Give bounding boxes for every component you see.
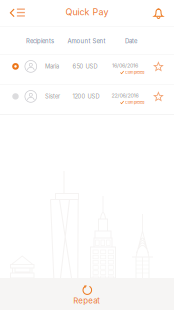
staticText: Repeat [73, 296, 100, 305]
staticText: Sister [45, 93, 60, 100]
staticText: 650 USD [72, 63, 97, 70]
staticText: Date [125, 37, 137, 45]
staticText: Quick Pay [65, 7, 108, 17]
button[interactable]: Sister [0, 85, 174, 115]
button[interactable]: Notifications [145, 1, 171, 25]
staticText: 1200 USD [72, 93, 99, 100]
staticText: 22/06/2016 [111, 92, 138, 99]
button[interactable]: Maria [0, 55, 174, 85]
staticText: 16/06/2016 [112, 62, 138, 69]
staticText: Completed [125, 100, 144, 105]
button[interactable]: Menu [2, 1, 32, 25]
staticText: Amount Sent [67, 37, 105, 45]
button[interactable]: Repeat [0, 278, 174, 310]
staticText: Recipients [26, 37, 54, 45]
staticText: Completed [125, 70, 144, 75]
staticText: Maria [45, 63, 59, 70]
